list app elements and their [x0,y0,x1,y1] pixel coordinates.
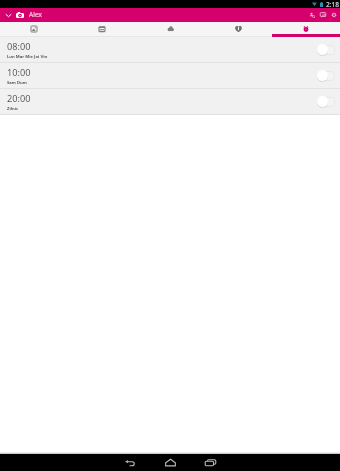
staticText: Sam Dum [7,80,27,86]
button[interactable]: Alex [16,8,42,22]
button[interactable]: Expand account [4,8,13,22]
staticText: Lun Mar Mie Joi Vin [7,54,48,60]
button[interactable]: Recent apps [190,454,230,471]
button[interactable]: 08:00 [0,37,340,62]
button[interactable]: Alarms [272,22,340,37]
button[interactable]: Weather [136,22,204,37]
button[interactable]: 20:00 [0,89,340,114]
button[interactable]: Settings [328,8,339,22]
button[interactable]: Security [204,22,272,37]
staticText: Zilnic [7,106,19,112]
button[interactable]: 10:00 [0,63,340,88]
button[interactable]: Toggle alarm [317,70,335,81]
staticText: 2:18 [326,0,340,8]
button[interactable]: Home [150,454,190,471]
staticText: Alex [29,10,42,19]
button[interactable]: Back [110,454,150,471]
button[interactable]: Toggle alarm [317,96,335,107]
staticText: 10:00 [7,66,31,79]
button[interactable]: Toggle alarm [317,44,335,55]
button[interactable]: Messages [317,8,328,22]
button[interactable]: Photos [0,22,68,37]
staticText: 20:00 [7,92,31,105]
button[interactable]: Events [68,22,136,37]
button[interactable]: People [306,8,317,22]
staticText: 08:00 [7,40,31,53]
